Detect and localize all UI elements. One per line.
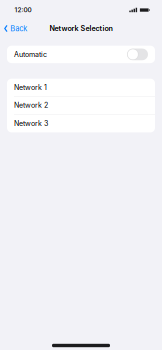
button[interactable]: Network 3 [7,114,155,132]
staticText: 12:00 [14,6,31,14]
button[interactable]: Network 2 [7,97,155,114]
staticText: Back [10,24,27,33]
button[interactable]: Network 1 [7,79,155,97]
staticText: Network 1 [14,83,47,92]
staticText: Automatic [14,50,47,59]
staticText: Network 3 [14,119,48,128]
staticText: Network Selection [49,24,112,33]
staticText: Network 2 [14,101,48,109]
button[interactable]: Back [0,21,31,35]
button[interactable]: Automatic [7,46,155,63]
